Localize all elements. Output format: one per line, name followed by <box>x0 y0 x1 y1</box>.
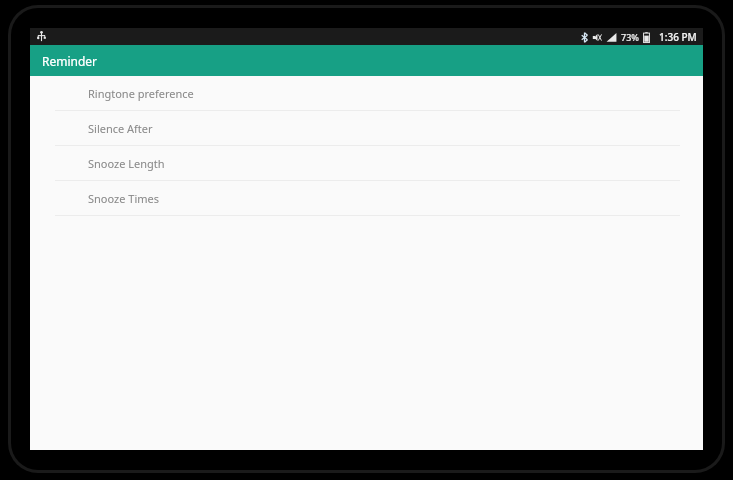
button[interactable]: Snooze Times <box>30 181 703 216</box>
staticText: Reminder <box>42 53 98 69</box>
button[interactable]: Ringtone preference <box>30 76 703 111</box>
staticText: 1:36 PM <box>659 30 697 44</box>
staticText: Snooze Times <box>88 191 159 206</box>
button[interactable]: Snooze Length <box>30 146 703 181</box>
staticText: Snooze Length <box>88 156 165 171</box>
staticText: Ringtone preference <box>88 86 194 101</box>
staticText: 73% <box>621 31 639 43</box>
staticText: Silence After <box>88 121 153 136</box>
button[interactable]: Silence After <box>30 111 703 146</box>
